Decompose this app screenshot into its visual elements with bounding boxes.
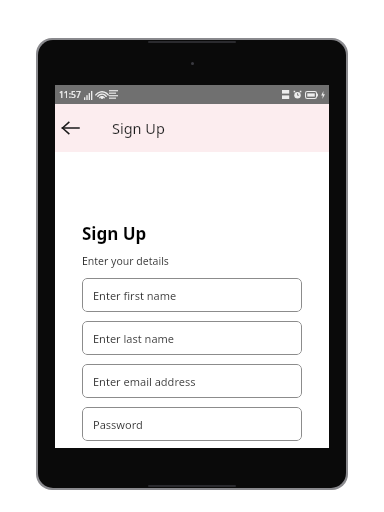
button[interactable]: Back <box>55 113 85 143</box>
staticText: Enter last name <box>93 331 175 346</box>
staticText: Enter email address <box>93 374 196 389</box>
staticText: Sign Up <box>112 118 165 138</box>
button[interactable]: Enter email address <box>82 364 302 398</box>
staticText: Password <box>93 417 143 432</box>
button[interactable]: Password <box>82 407 302 441</box>
staticText: 11:57 <box>59 89 81 101</box>
button[interactable]: Enter last name <box>82 321 302 355</box>
button[interactable]: Enter first name <box>82 278 302 312</box>
staticText: Enter first name <box>93 288 177 303</box>
staticText: Enter your details <box>82 254 169 268</box>
staticText: Sign Up <box>82 222 147 245</box>
